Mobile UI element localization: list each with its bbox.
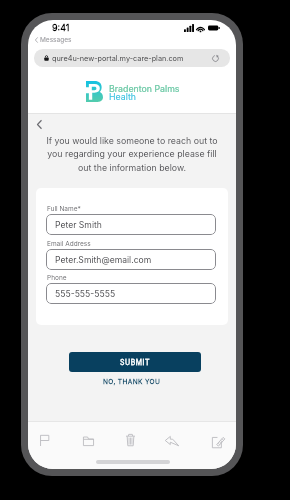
button[interactable]: Peter.Smith@email.com bbox=[46, 249, 216, 270]
staticText: Peter.Smith@email.com bbox=[55, 255, 152, 265]
button[interactable]: 555-555-5555 bbox=[46, 283, 216, 304]
staticText: Messages bbox=[40, 36, 72, 44]
button[interactable]: Messages bbox=[34, 36, 72, 44]
staticText: SUBMIT bbox=[120, 358, 150, 366]
button[interactable]: NO, THANK YOU bbox=[98, 376, 166, 388]
button[interactable]: qure4u-new-portal.my-care-plan.com bbox=[34, 49, 230, 67]
button[interactable]: Reply bbox=[162, 433, 182, 449]
staticText: 555-555-5555 bbox=[55, 289, 116, 299]
button[interactable]: Delete bbox=[123, 431, 138, 449]
staticText: qure4u-new-portal.my-care-plan.com bbox=[52, 54, 184, 63]
staticText: If you would like someone to reach out t… bbox=[28, 135, 236, 174]
button[interactable]: Bookmarks bbox=[80, 433, 97, 449]
staticText: Email Address bbox=[47, 240, 91, 248]
button[interactable]: Reload bbox=[212, 55, 219, 62]
staticText: Phone bbox=[47, 274, 67, 282]
staticText: Full Name* bbox=[47, 205, 81, 213]
staticText: Bradenton Palms bbox=[109, 83, 180, 94]
staticText: Peter Smith bbox=[55, 220, 102, 230]
button[interactable]: Peter Smith bbox=[46, 214, 216, 235]
button[interactable]: SUBMIT bbox=[69, 352, 201, 372]
button[interactable]: Compose bbox=[209, 433, 228, 451]
button[interactable]: Back bbox=[30, 115, 48, 133]
button[interactable]: Flag bbox=[37, 432, 52, 449]
staticText: Health bbox=[109, 91, 137, 102]
staticText: NO, THANK YOU bbox=[103, 378, 161, 386]
staticText: 9:41 bbox=[52, 22, 70, 33]
